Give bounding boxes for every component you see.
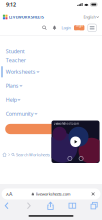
button[interactable]: Home	[2, 153, 7, 157]
staticText: English	[84, 14, 96, 20]
button[interactable]: Search	[41, 24, 48, 32]
button[interactable]: Stop loading	[88, 189, 99, 199]
staticText: Liveworksheets.com	[53, 122, 78, 125]
staticText: Plans	[6, 82, 19, 89]
staticText: Login	[61, 25, 70, 30]
staticText: Worksheets	[6, 68, 36, 75]
button[interactable]: Teacher	[1, 55, 100, 65]
button[interactable]: Worksheets	[1, 65, 100, 79]
button[interactable]: Plans	[1, 79, 100, 93]
button[interactable]: Back	[3, 201, 11, 210]
staticText: Sign up	[76, 22, 83, 33]
staticText: Teacher	[6, 57, 26, 64]
staticText: Student	[6, 48, 25, 55]
button[interactable]: Community	[1, 107, 100, 121]
staticText: LIVEWORKSHEETS	[9, 14, 44, 20]
button[interactable]: LIVEWORKSHEETS	[3, 14, 44, 20]
staticText: Help	[6, 96, 17, 103]
button[interactable]: Student	[1, 47, 100, 55]
button[interactable]: Notifications	[51, 24, 58, 32]
button[interactable]: Play video	[51, 120, 99, 163]
button[interactable]: Forward	[24, 201, 33, 210]
button[interactable]: Bookmarks	[68, 201, 76, 210]
button[interactable]: English	[84, 14, 99, 20]
button[interactable]: Login	[61, 23, 70, 32]
button[interactable]: Share	[46, 201, 55, 210]
staticText: 9:12	[6, 1, 16, 8]
button[interactable]: Sign up	[74, 25, 84, 30]
button[interactable]	[5, 121, 96, 139]
button[interactable]: Search Worksheets	[11, 152, 50, 157]
staticText: ᴀA	[6, 190, 12, 197]
staticText: Search Worksheets	[16, 152, 50, 157]
button[interactable]: Page settings	[3, 189, 14, 199]
button[interactable]: Menu	[88, 24, 96, 32]
button[interactable]: Tabs	[90, 201, 98, 210]
staticText: liveworksheets.com	[36, 191, 71, 197]
staticText: Community	[6, 110, 34, 117]
button[interactable]: Help	[1, 93, 100, 107]
